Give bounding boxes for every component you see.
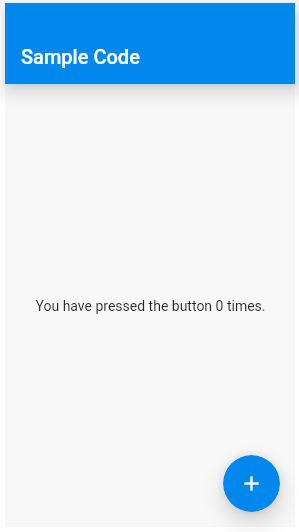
staticText: Sample Code <box>21 45 140 68</box>
button[interactable]: Add <box>223 455 280 512</box>
staticText: You have pressed the button 0 times. <box>35 298 266 314</box>
